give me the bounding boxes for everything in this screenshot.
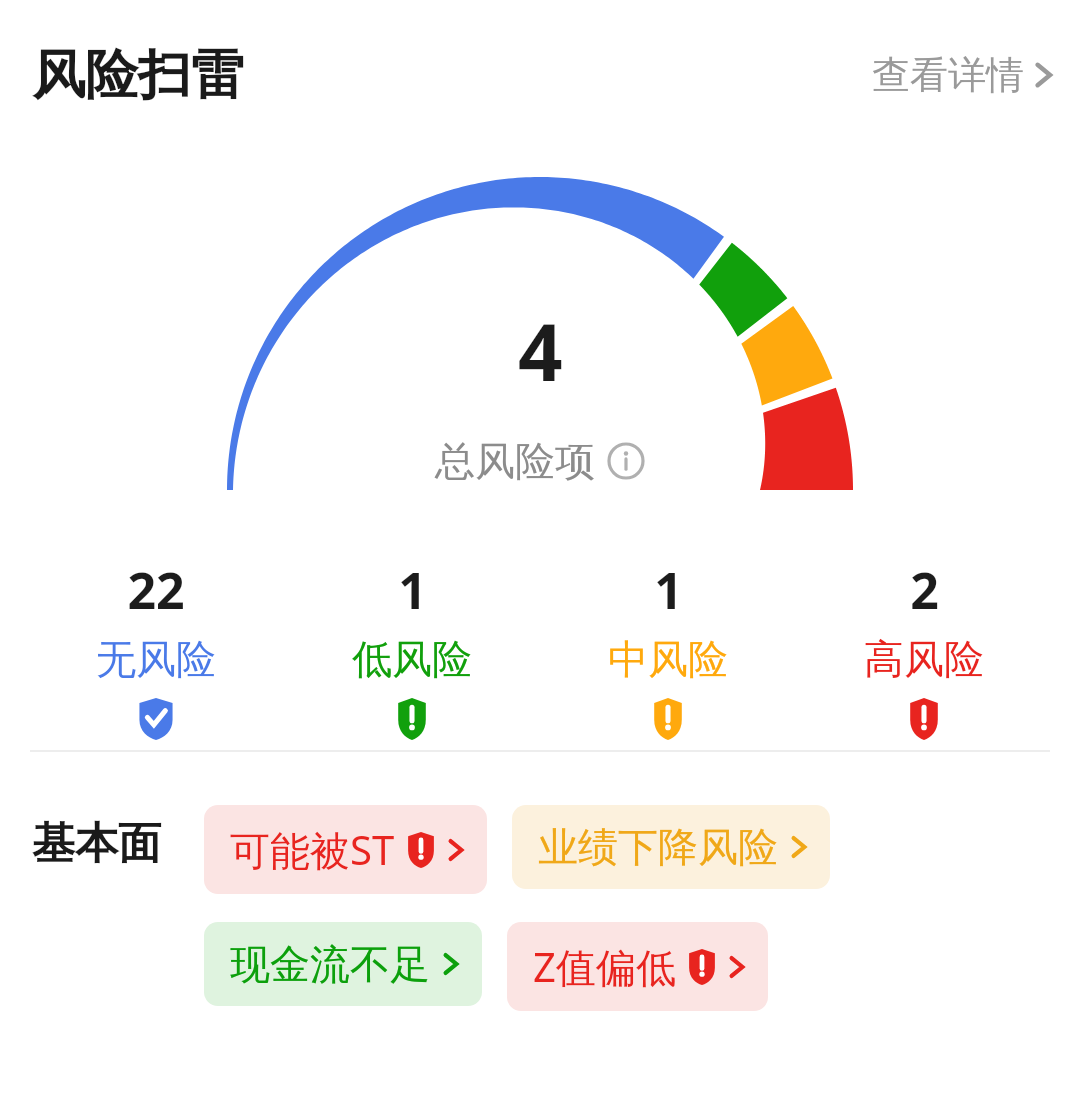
staticText: 1: [654, 556, 683, 624]
button[interactable]: 现金流不足: [204, 922, 482, 1006]
staticText: 22: [127, 556, 185, 624]
button[interactable]: 22: [28, 550, 284, 740]
button[interactable]: 1: [540, 550, 796, 740]
button[interactable]: Z值偏低: [507, 922, 768, 1011]
staticText: 现金流不足: [230, 939, 430, 989]
button[interactable]: 总风险项: [435, 436, 645, 486]
other: 无风险: [138, 698, 174, 740]
other: 高风险: [909, 698, 939, 740]
other: 说明: [607, 442, 645, 480]
button[interactable]: 业绩下降风险: [512, 805, 830, 889]
other: 低风险: [397, 698, 427, 740]
staticText: 查看详情: [872, 51, 1024, 99]
staticText: 基本面: [32, 817, 161, 871]
staticText: Z值偏低: [533, 939, 676, 994]
staticText: 1: [398, 556, 427, 624]
button[interactable]: 1: [284, 550, 540, 740]
staticText: 低风险: [352, 634, 472, 684]
staticText: 中风险: [608, 634, 728, 684]
staticText: 高风险: [864, 634, 984, 684]
staticText: 2: [910, 556, 939, 624]
staticText: 无风险: [96, 634, 216, 684]
staticText: 风险扫雷: [32, 42, 244, 109]
staticText: 可能被ST: [230, 822, 395, 877]
staticText: 总风险项: [435, 436, 595, 486]
button[interactable]: 2: [796, 550, 1052, 740]
other: 中风险: [653, 698, 683, 740]
staticText: 4: [518, 298, 563, 404]
button[interactable]: 可能被ST: [204, 805, 487, 894]
button[interactable]: 查看详情: [852, 37, 1080, 113]
staticText: 业绩下降风险: [538, 822, 778, 872]
